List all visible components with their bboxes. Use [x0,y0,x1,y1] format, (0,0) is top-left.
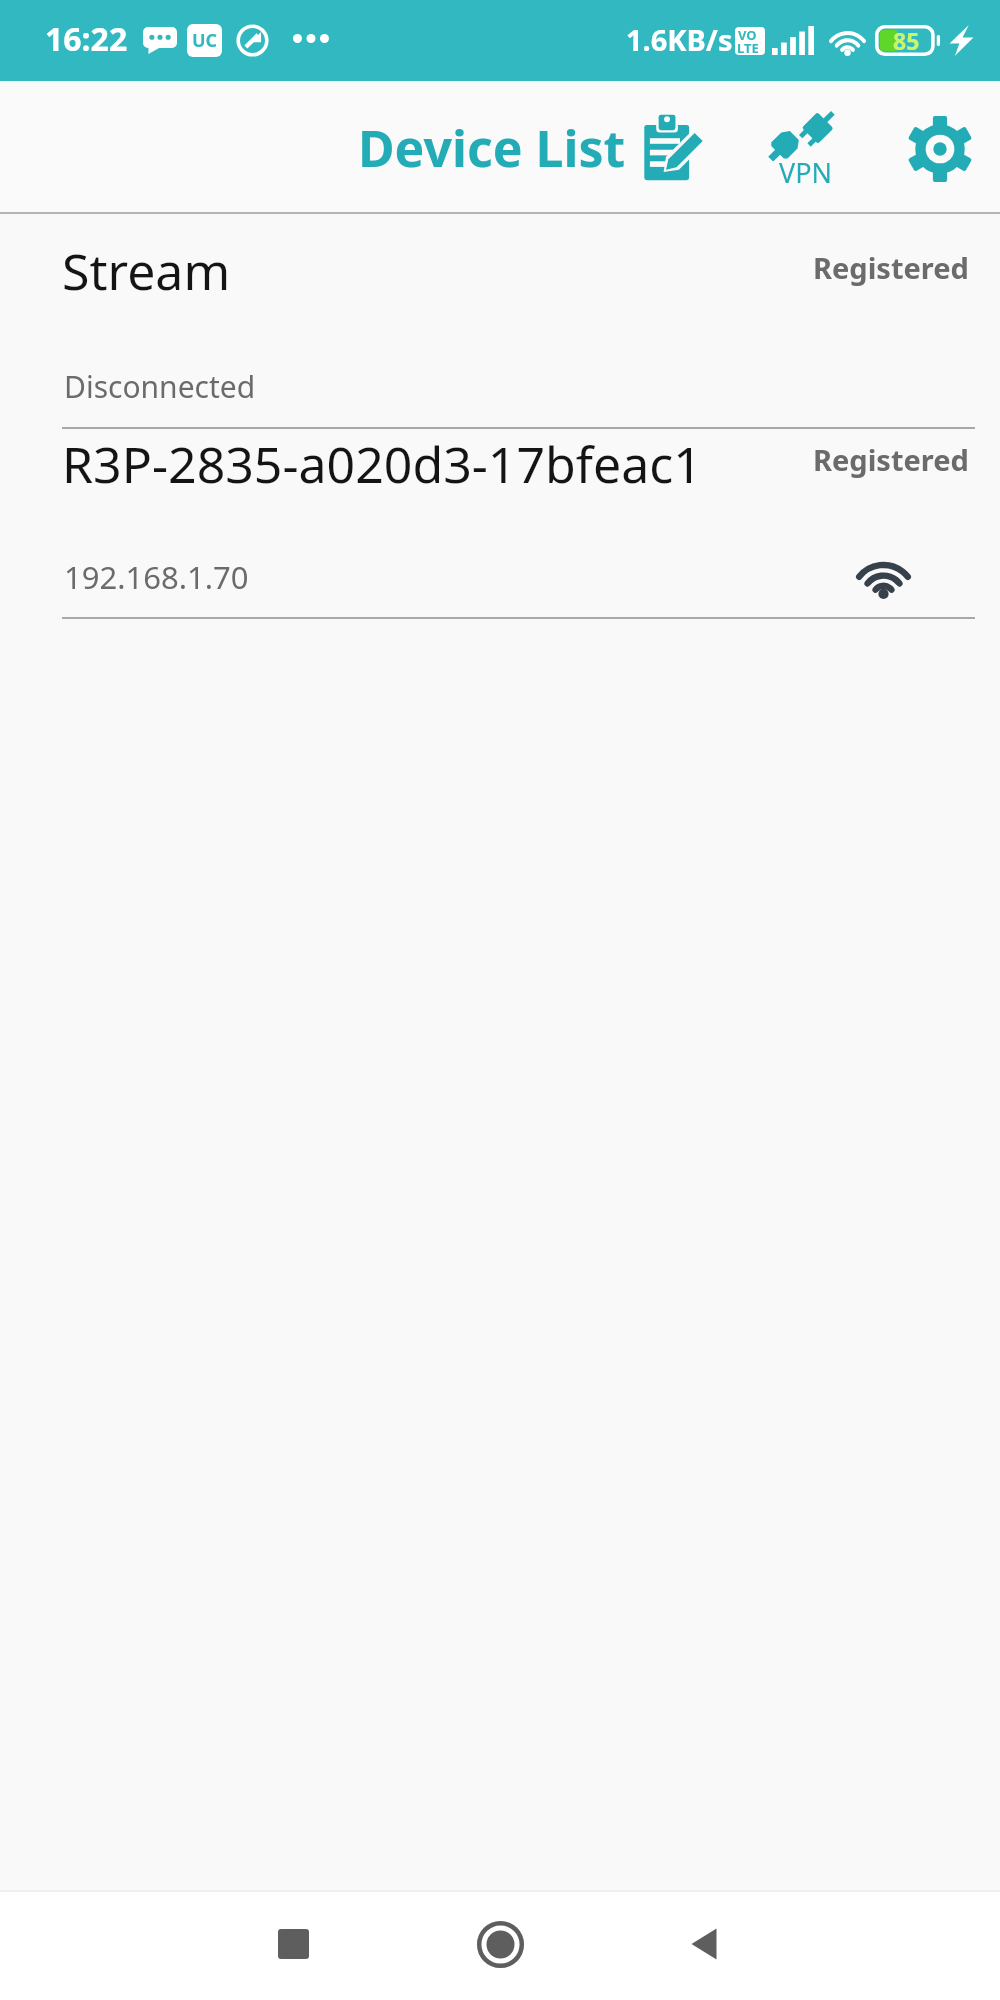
staticText: 1.6KB/s [626,20,733,59]
staticText: Device List [358,114,626,182]
staticText: Disconnected [64,366,256,407]
staticText: LTE [737,39,759,55]
button[interactable]: Home [455,1899,545,1989]
staticText: VPN [779,154,833,191]
button[interactable]: Edit list [630,105,716,191]
staticText: VO [738,27,757,44]
button[interactable]: Back [659,1899,749,1989]
staticText: Registered [813,440,969,479]
button[interactable]: VPN [757,101,853,197]
staticText: Registered [813,248,969,287]
button[interactable]: Recents [248,1899,338,1989]
button[interactable]: R3P-2835-a020d3-17bfeac1 [0,429,1000,619]
staticText: 16:22 [45,17,128,61]
staticText: R3P-2835-a020d3-17bfeac1 [62,430,702,498]
staticText: Stream [62,237,231,305]
staticText: UC [192,28,218,53]
button[interactable]: Settings [897,106,983,192]
button[interactable]: Stream [0,214,1000,429]
staticText: 85 [893,25,920,56]
staticText: 192.168.1.70 [64,556,249,598]
